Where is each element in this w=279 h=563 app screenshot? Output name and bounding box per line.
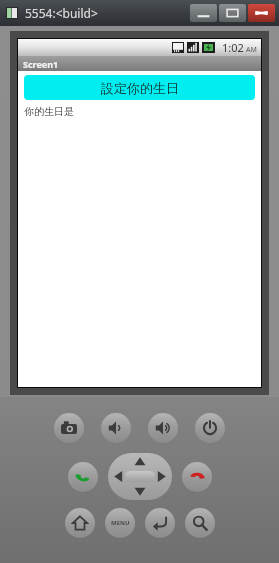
button[interactable]: Directional pad xyxy=(108,453,172,500)
button[interactable]: Home xyxy=(65,508,95,538)
staticText: Screen1 xyxy=(23,58,59,70)
staticText: AM xyxy=(246,45,257,55)
button[interactable]: MENU xyxy=(105,508,135,538)
button[interactable]: End call xyxy=(182,462,212,492)
button[interactable]: Power xyxy=(195,413,225,443)
button[interactable]: Window button xyxy=(248,4,275,22)
button[interactable]: Volume up xyxy=(148,413,178,443)
staticText: 1:02 xyxy=(222,40,244,55)
button[interactable]: Window button xyxy=(190,4,217,22)
button[interactable]: Back xyxy=(145,508,175,538)
staticText: MENU xyxy=(111,519,130,527)
button[interactable]: 設定你的生日 xyxy=(24,75,255,100)
staticText: 設定你的生日 xyxy=(101,80,179,96)
staticText: 5554:<build> xyxy=(25,5,98,21)
button[interactable]: Call xyxy=(68,462,98,492)
button[interactable]: Volume down xyxy=(101,413,131,443)
button[interactable]: Window button xyxy=(219,4,246,22)
button[interactable]: Camera xyxy=(54,413,84,443)
staticText: 你的生日是 xyxy=(24,105,74,118)
button[interactable]: Search xyxy=(185,508,215,538)
button[interactable]: Select xyxy=(125,471,155,482)
